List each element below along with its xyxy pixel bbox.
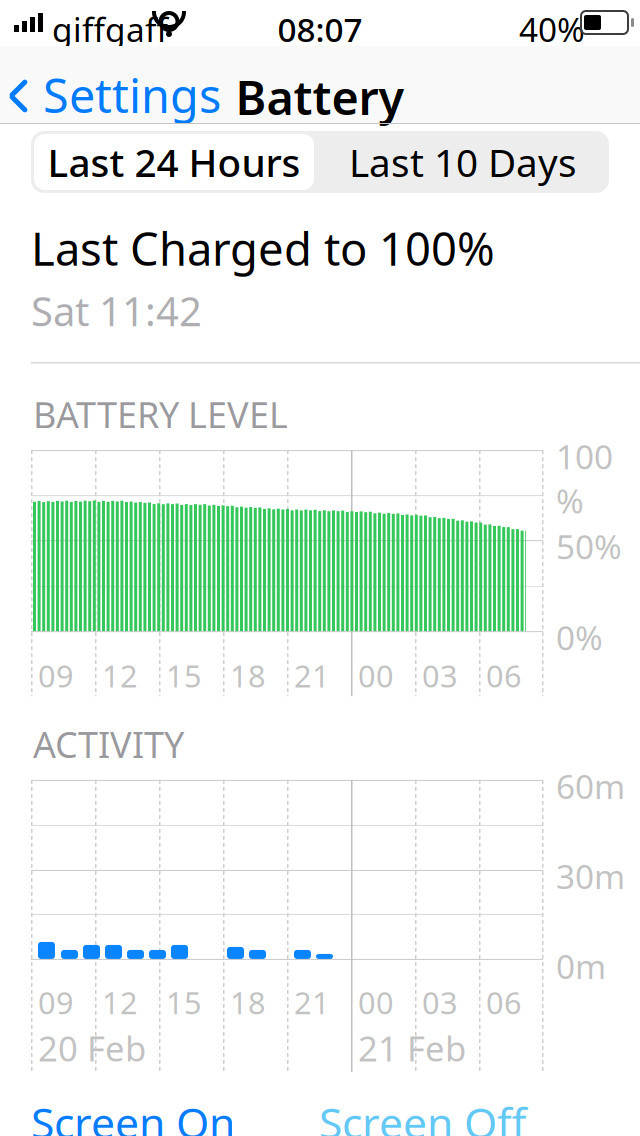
staticText: 15 <box>166 982 202 1023</box>
staticText: 15 <box>166 655 202 696</box>
staticText: 0% <box>556 615 603 659</box>
staticText: 12 <box>102 982 138 1023</box>
staticText: 06 <box>486 655 522 696</box>
staticText: 100% <box>556 434 613 523</box>
staticText: 09 <box>38 655 74 696</box>
staticText: 50% <box>556 524 622 568</box>
staticText: 00 <box>358 982 394 1023</box>
staticText: 18 <box>230 655 266 696</box>
staticText: 12 <box>102 655 138 696</box>
staticText: 08:07 <box>277 7 362 51</box>
staticText: 0m <box>556 944 606 988</box>
staticText: Screen On <box>31 1094 235 1136</box>
staticText: 03 <box>422 982 458 1023</box>
staticText: 40% <box>519 7 585 51</box>
staticText: Sat 11:42 <box>31 284 202 337</box>
staticText: Last 10 Days <box>349 136 577 188</box>
staticText: giffgaff <box>52 7 168 51</box>
staticText: Settings <box>43 64 221 126</box>
staticText: Screen Off <box>319 1094 526 1136</box>
staticText: 30m <box>556 854 625 898</box>
staticText: 09 <box>38 982 74 1023</box>
staticText: Last Charged to 100% <box>31 218 495 278</box>
staticText: 20 Feb <box>38 1025 146 1071</box>
staticText: Last 24 Hours <box>47 136 300 188</box>
staticText: 00 <box>358 655 394 696</box>
staticText: ACTIVITY <box>33 720 184 768</box>
button[interactable]: Last 24 Hours <box>31 131 314 190</box>
staticText: BATTERY LEVEL <box>33 390 288 438</box>
staticText: 21 <box>294 982 330 1023</box>
staticText: 60m <box>556 764 625 808</box>
staticText: 21 Feb <box>358 1025 466 1071</box>
staticText: 21 <box>294 655 330 696</box>
staticText: 18 <box>230 982 266 1023</box>
staticText: Battery <box>235 66 404 128</box>
button[interactable]: Settings <box>0 46 221 126</box>
staticText: 06 <box>486 982 522 1023</box>
staticText: 03 <box>422 655 458 696</box>
button[interactable]: Last 10 Days <box>31 131 606 190</box>
